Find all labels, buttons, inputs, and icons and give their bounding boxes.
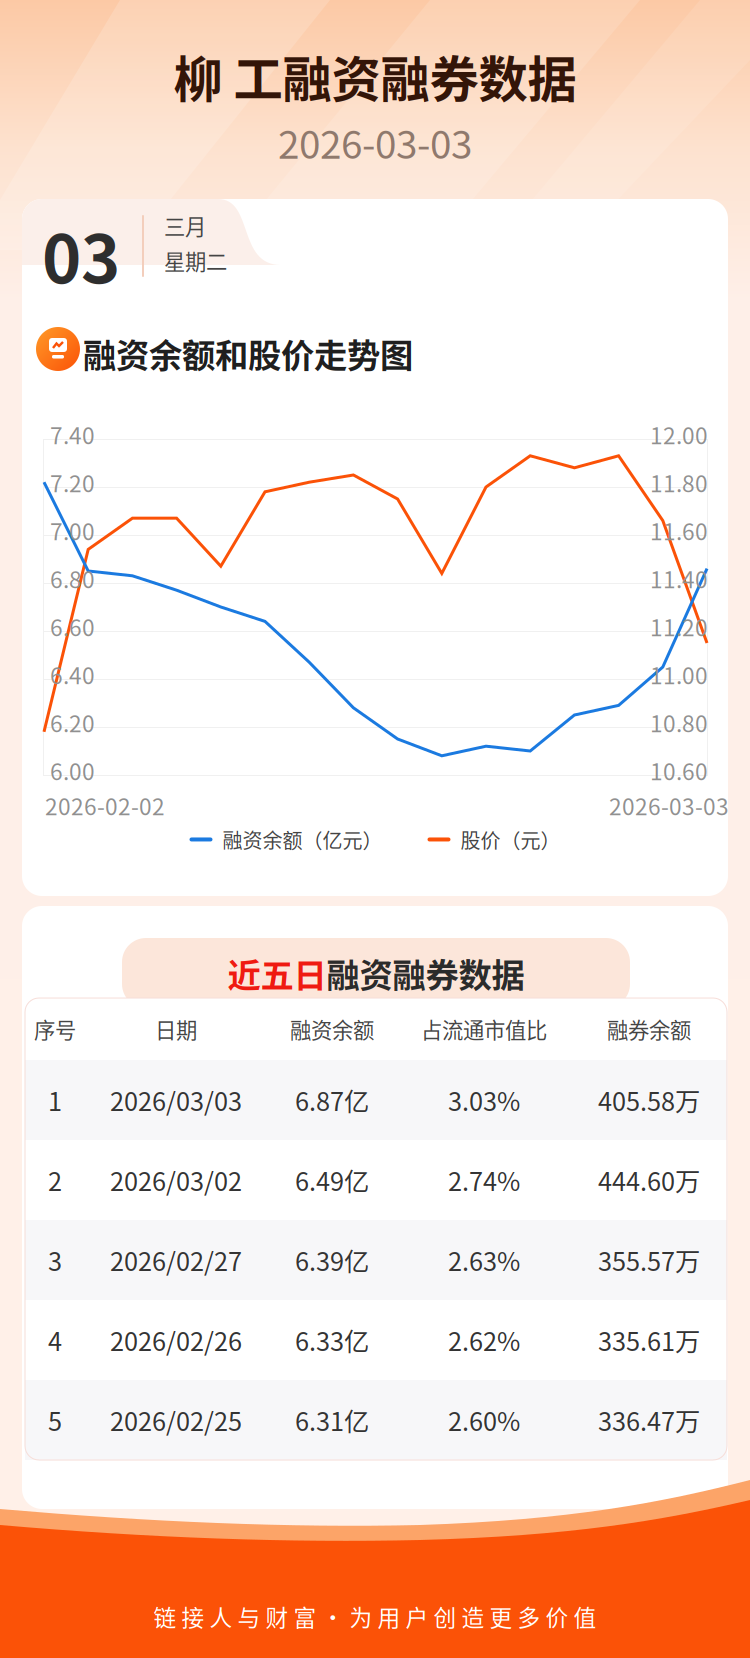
staticText: 2.74% <box>448 1162 520 1198</box>
staticText: 444.60万 <box>598 1162 700 1198</box>
staticText: 链 接 人 与 财 富 · 为 用 户 创 造 更 多 价 值 <box>153 1600 596 1633</box>
staticText: 2026/02/27 <box>110 1242 242 1278</box>
staticText: 融资融券数据 <box>326 949 524 997</box>
staticText: 占流通市值比 <box>421 1014 547 1044</box>
staticText: 2026/02/26 <box>110 1322 242 1358</box>
staticText: 6.60 <box>50 610 95 643</box>
staticText: 11.80 <box>650 466 708 499</box>
staticText: 4 <box>48 1322 62 1358</box>
staticText: 柳 工融资融券数据 <box>173 40 576 111</box>
staticText: 日期 <box>155 1014 197 1044</box>
staticText: 11.00 <box>650 658 708 691</box>
staticText: 融资余额和股价走势图 <box>83 329 413 377</box>
staticText: 11.20 <box>650 610 708 643</box>
staticText: 355.57万 <box>598 1242 700 1278</box>
staticText: 2.60% <box>448 1402 520 1438</box>
staticText: 2 <box>48 1162 62 1198</box>
staticText: 2026-03-03 <box>609 789 729 822</box>
staticText: 融资余额（亿元） <box>222 825 382 854</box>
staticText: 6.49亿 <box>295 1162 369 1198</box>
staticText: 3 <box>48 1242 62 1278</box>
staticText: 股价（元） <box>460 825 560 854</box>
staticText: 融券余额 <box>607 1014 691 1044</box>
staticText: 12.00 <box>650 418 708 451</box>
staticText: 6.80 <box>50 562 95 595</box>
staticText: 7.20 <box>50 466 95 499</box>
staticText: 1 <box>48 1082 62 1118</box>
staticText: 6.33亿 <box>295 1322 369 1358</box>
staticText: 03 <box>42 206 120 302</box>
staticText: 10.80 <box>650 706 708 739</box>
staticText: 5 <box>48 1402 62 1438</box>
staticText: 序号 <box>34 1014 76 1044</box>
staticText: 2026-02-02 <box>45 789 165 822</box>
staticText: 2026/03/02 <box>110 1162 242 1198</box>
staticText: 三月 <box>164 210 206 241</box>
staticText: 2026/03/03 <box>110 1082 242 1118</box>
staticText: 3.03% <box>448 1082 520 1118</box>
staticText: 2026-03-03 <box>278 114 472 170</box>
staticText: 2.62% <box>448 1322 520 1358</box>
staticText: 星期二 <box>164 245 227 276</box>
staticText: 6.31亿 <box>295 1402 369 1438</box>
staticText: 6.39亿 <box>295 1242 369 1278</box>
staticText: 11.60 <box>650 514 708 547</box>
staticText: 2.63% <box>448 1242 520 1278</box>
staticText: 融资余额 <box>290 1014 374 1044</box>
staticText: 7.00 <box>50 514 95 547</box>
staticText: 6.20 <box>50 706 95 739</box>
staticText: 335.61万 <box>598 1322 700 1358</box>
staticText: 405.58万 <box>598 1082 700 1118</box>
staticText: 6.40 <box>50 658 95 691</box>
staticText: 2026/02/25 <box>110 1402 242 1438</box>
staticText: 7.40 <box>50 418 95 451</box>
staticText: 近五日 <box>227 949 326 997</box>
staticText: 6.00 <box>50 754 95 787</box>
staticText: 11.40 <box>650 562 708 595</box>
staticText: 6.87亿 <box>295 1082 369 1118</box>
staticText: 336.47万 <box>598 1402 700 1438</box>
staticText: 10.60 <box>650 754 708 787</box>
